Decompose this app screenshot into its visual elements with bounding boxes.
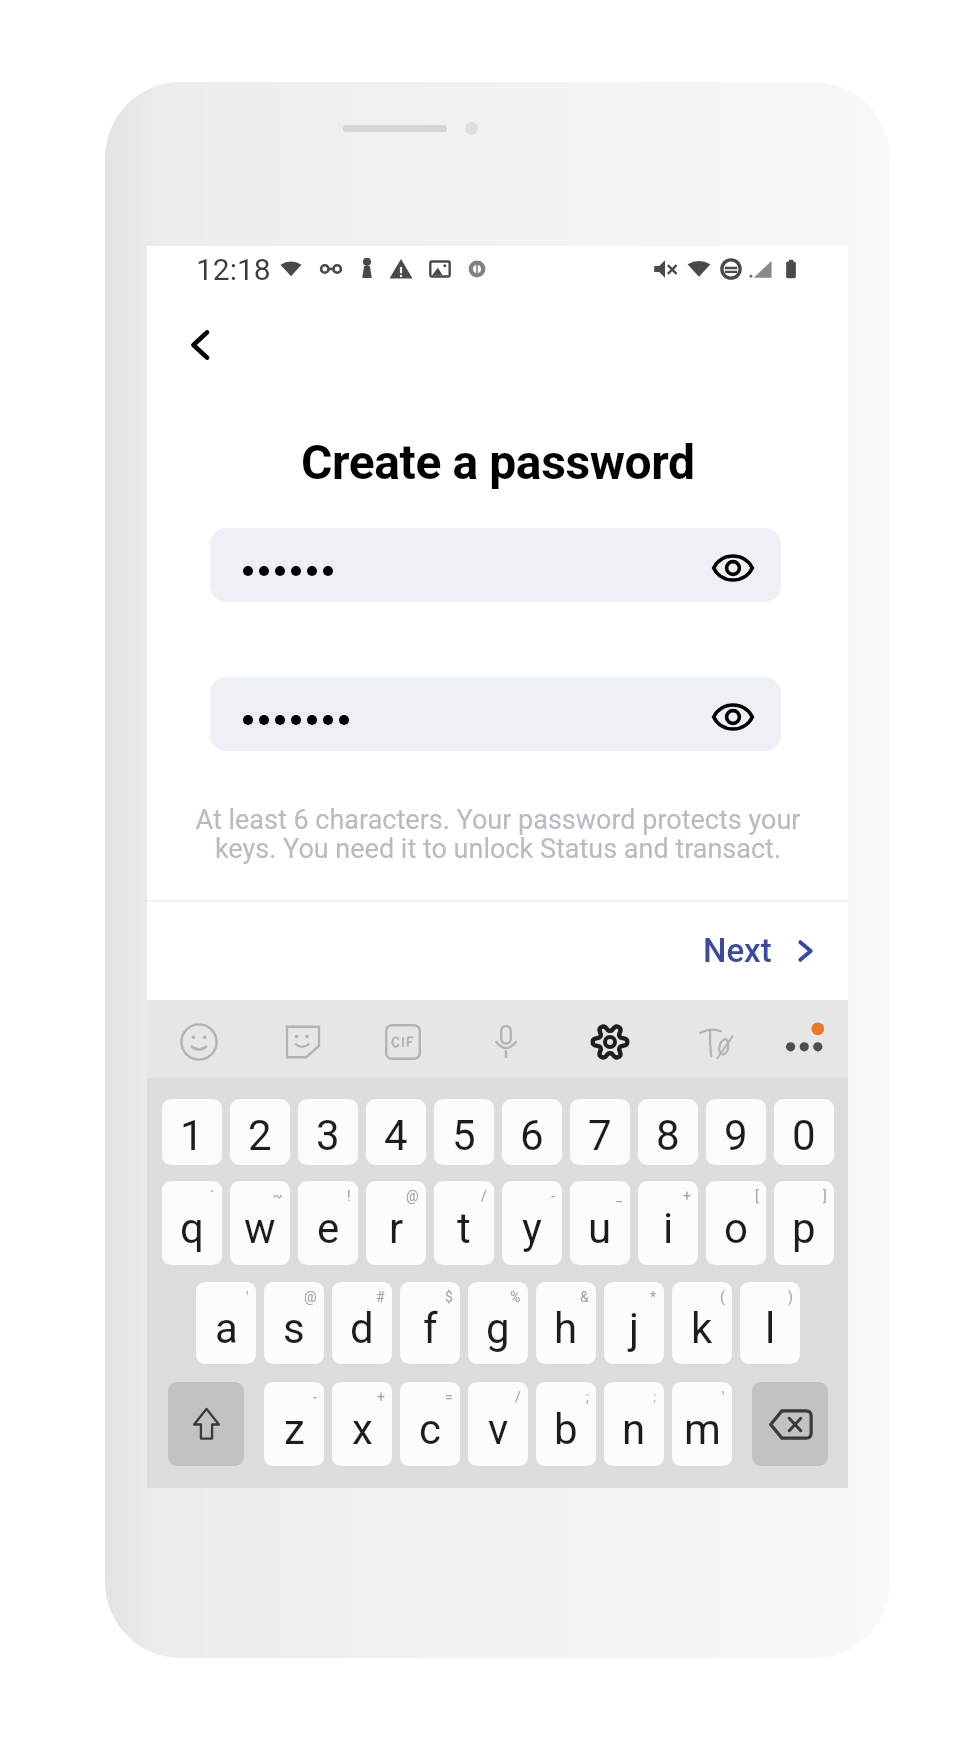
staticText: / — [481, 1188, 487, 1204]
staticText: / — [515, 1389, 521, 1405]
button[interactable]: Back — [172, 317, 228, 373]
staticText: [ — [755, 1188, 759, 1204]
staticText: $ — [445, 1289, 453, 1305]
staticText: p — [792, 1204, 816, 1253]
staticText: o — [724, 1204, 748, 1253]
staticText: ' — [246, 1289, 249, 1305]
button[interactable]: - — [264, 1382, 324, 1466]
staticText: e — [317, 1204, 340, 1253]
staticText: q — [180, 1204, 204, 1253]
button[interactable]: + — [332, 1382, 392, 1466]
button[interactable]: $ — [400, 1282, 460, 1364]
button[interactable]: - — [502, 1181, 562, 1265]
button[interactable]: % — [468, 1282, 528, 1364]
staticText: f — [423, 1304, 438, 1353]
staticText: z — [284, 1405, 305, 1454]
staticText: k — [691, 1304, 713, 1353]
staticText: b — [554, 1405, 578, 1454]
staticText: x — [352, 1405, 373, 1454]
staticText: ] — [823, 1188, 827, 1204]
staticText: 0 — [792, 1111, 816, 1160]
button[interactable]: 9 — [706, 1099, 766, 1165]
staticText: 2 — [248, 1111, 272, 1160]
button[interactable]: 3 — [298, 1099, 358, 1165]
button[interactable]: @ — [264, 1282, 324, 1364]
staticText: v — [488, 1405, 509, 1454]
button[interactable]: 8 — [638, 1099, 698, 1165]
staticText: - — [551, 1188, 555, 1204]
button[interactable]: Show password — [210, 528, 781, 602]
staticText: ' — [722, 1389, 725, 1405]
button[interactable]: ' — [672, 1382, 732, 1466]
button[interactable]: + — [638, 1181, 698, 1265]
button[interactable]: : — [604, 1382, 664, 1466]
button[interactable]: = — [400, 1382, 460, 1466]
button[interactable]: 6 — [502, 1099, 562, 1165]
button[interactable]: ( — [672, 1282, 732, 1364]
staticText: ~ — [273, 1188, 283, 1204]
button[interactable]: [ — [706, 1181, 766, 1265]
button[interactable]: Stickers — [277, 1020, 329, 1064]
staticText: c — [419, 1405, 441, 1454]
button[interactable]: _ — [570, 1181, 630, 1265]
staticText: 12:18 — [196, 252, 271, 287]
staticText: : — [653, 1389, 657, 1405]
button[interactable]: More options — [777, 1020, 829, 1064]
staticText: s — [283, 1304, 305, 1353]
staticText: % — [510, 1289, 521, 1305]
staticText: g — [486, 1304, 510, 1353]
staticText: # — [376, 1289, 385, 1305]
button[interactable]: 0 — [774, 1099, 834, 1165]
staticText: i — [663, 1204, 674, 1253]
button[interactable]: ` — [162, 1181, 222, 1265]
button[interactable]: Handwriting — [691, 1020, 743, 1064]
button[interactable]: Show password — [707, 691, 759, 743]
button[interactable]: & — [536, 1282, 596, 1364]
button[interactable]: Show password — [210, 677, 781, 751]
button[interactable]: * — [604, 1282, 664, 1364]
button[interactable]: 5 — [434, 1099, 494, 1165]
button[interactable]: 2 — [230, 1099, 290, 1165]
button[interactable]: ~ — [230, 1181, 290, 1265]
button[interactable]: Settings — [584, 1020, 636, 1064]
button[interactable]: Next — [691, 904, 830, 997]
staticText: n — [622, 1405, 646, 1454]
button[interactable]: ' — [196, 1282, 256, 1364]
staticText: a — [215, 1304, 238, 1353]
staticText: ` — [210, 1188, 215, 1204]
button[interactable]: / — [468, 1382, 528, 1466]
button[interactable]: # — [332, 1282, 392, 1364]
button[interactable]: GIF — [377, 1020, 429, 1064]
staticText: + — [377, 1389, 385, 1405]
staticText: 3 — [316, 1111, 340, 1160]
button[interactable]: Voice input — [480, 1020, 532, 1064]
staticText: @ — [406, 1188, 419, 1204]
staticText: l — [765, 1304, 776, 1353]
staticText: ; — [586, 1389, 589, 1405]
staticText: h — [554, 1304, 578, 1353]
staticText: ( — [720, 1289, 725, 1305]
staticText: 7 — [588, 1111, 612, 1160]
staticText: Create a password — [301, 434, 695, 490]
button[interactable]: Shift — [168, 1382, 244, 1466]
button[interactable]: @ — [366, 1181, 426, 1265]
staticText: t — [457, 1204, 471, 1253]
staticText: y — [522, 1204, 542, 1253]
staticText: 6 — [520, 1111, 544, 1160]
button[interactable]: Emoji — [173, 1020, 225, 1064]
staticText: - — [313, 1389, 317, 1405]
staticText: u — [588, 1204, 612, 1253]
button[interactable]: / — [434, 1181, 494, 1265]
button[interactable]: ! — [298, 1181, 358, 1265]
button[interactable]: Backspace — [752, 1382, 828, 1466]
button[interactable]: ] — [774, 1181, 834, 1265]
staticText: 9 — [724, 1111, 748, 1160]
button[interactable]: 7 — [570, 1099, 630, 1165]
button[interactable]: 4 — [366, 1099, 426, 1165]
button[interactable]: ; — [536, 1382, 596, 1466]
staticText: Next — [703, 931, 772, 970]
button[interactable]: Show password — [707, 542, 759, 594]
button[interactable]: ) — [740, 1282, 800, 1364]
button[interactable]: 1 — [162, 1099, 222, 1165]
staticText: At least 6 characters. Your password pro… — [173, 804, 823, 865]
